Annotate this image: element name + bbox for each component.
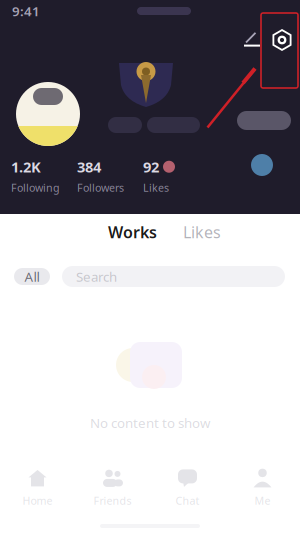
- staticText: Works: [108, 221, 157, 243]
- button[interactable]: Level: [108, 117, 142, 133]
- button[interactable]: Likes: [180, 222, 224, 242]
- button[interactable]: Works: [105, 222, 160, 242]
- staticText: Followers: [77, 180, 124, 195]
- staticText: Chat: [175, 493, 199, 508]
- button[interactable]: Edit: [237, 111, 291, 130]
- staticText: Following: [11, 180, 60, 195]
- staticText: Friends: [93, 493, 131, 508]
- staticText: Likes: [183, 221, 221, 243]
- staticText: 9:41: [12, 2, 40, 20]
- staticText: Likes: [143, 180, 169, 195]
- button[interactable]: All: [14, 268, 50, 285]
- button[interactable]: Me: [225, 457, 300, 519]
- button[interactable]: Settings: [265, 23, 299, 57]
- staticText: 384: [77, 157, 101, 176]
- button[interactable]: User ID: [147, 117, 200, 133]
- button[interactable]: Home: [0, 457, 75, 519]
- button[interactable]: Edit profile: [237, 24, 267, 54]
- staticText: No content to show: [90, 414, 210, 432]
- button[interactable]: Friends: [75, 457, 150, 519]
- button[interactable]: 1.2K: [11, 157, 77, 195]
- staticText: 92: [143, 157, 159, 176]
- button[interactable]: Search: [62, 266, 285, 287]
- staticText: All: [24, 268, 39, 285]
- button[interactable]: 384: [77, 157, 143, 195]
- staticText: Me: [254, 493, 270, 508]
- button[interactable]: 92: [143, 157, 203, 195]
- staticText: Home: [22, 493, 52, 508]
- staticText: Search: [76, 268, 117, 285]
- button[interactable]: Chat: [150, 457, 225, 519]
- staticText: 1.2K: [11, 157, 41, 176]
